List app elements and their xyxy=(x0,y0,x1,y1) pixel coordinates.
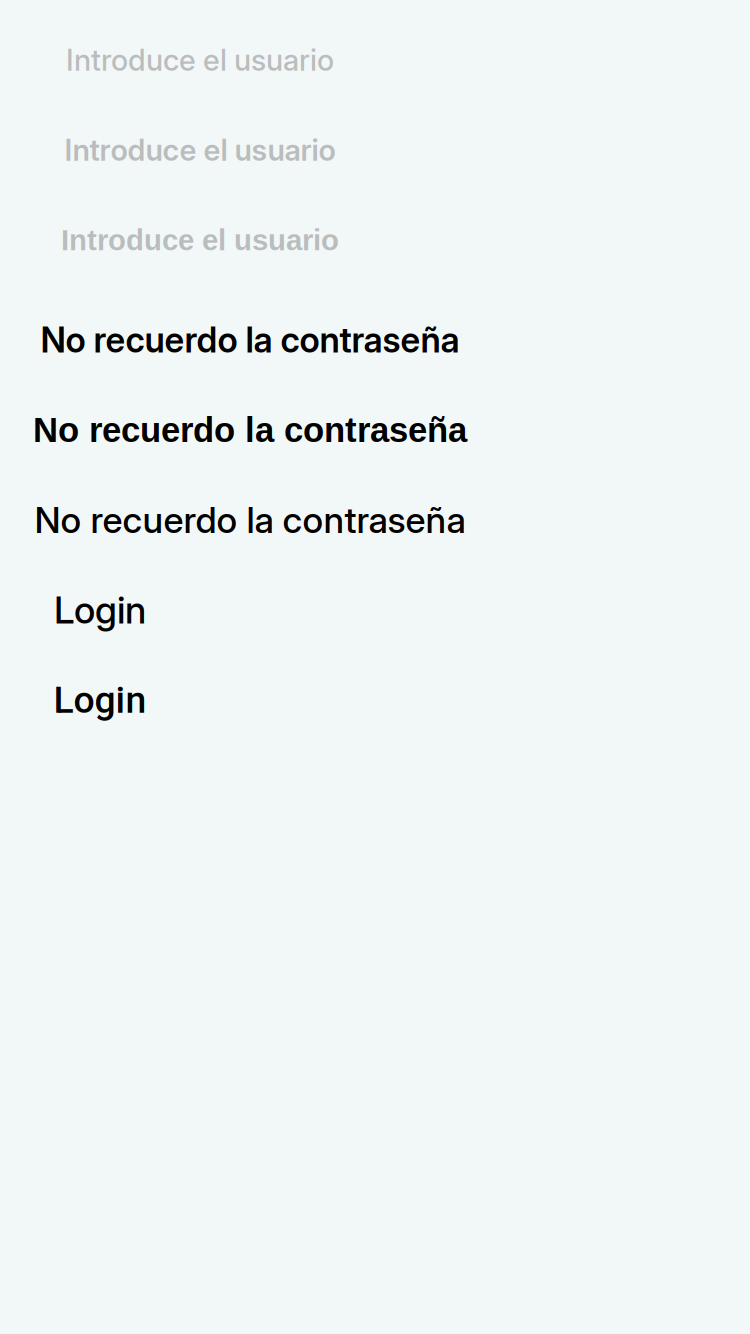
staticText: No recuerdo la contraseña xyxy=(34,498,465,542)
staticText: No recuerdo la contraseña xyxy=(33,411,467,449)
staticText: No recuerdo la contraseña xyxy=(40,319,459,361)
staticText: Introduce el usuario xyxy=(64,132,335,168)
staticText: Login xyxy=(53,678,146,722)
staticText: Introduce el usuario xyxy=(66,42,334,78)
staticText: Login xyxy=(54,587,146,633)
staticText: Introduce el usuario xyxy=(61,224,339,256)
